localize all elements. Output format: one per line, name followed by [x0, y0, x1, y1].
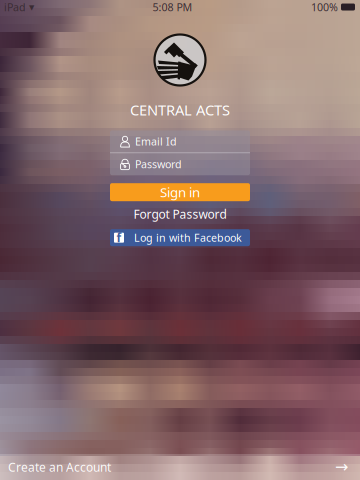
staticText: Email Id [135, 134, 177, 149]
staticText: Sign in [160, 183, 200, 201]
button[interactable]: Create an Account [0, 454, 360, 480]
staticText: Forgot Password [133, 206, 226, 222]
staticText: Password [135, 157, 182, 171]
staticText: 5:08 PM [152, 0, 192, 14]
staticText: ▾ [29, 1, 34, 13]
staticText: 100% [311, 0, 338, 14]
staticText: Log in with Facebook [134, 231, 242, 245]
button[interactable]: f [110, 229, 250, 246]
staticText: CENTRAL ACTS [130, 100, 230, 119]
staticText: iPad [4, 0, 26, 14]
staticText: Create an Account [8, 459, 111, 475]
button[interactable]: Sign in [110, 183, 250, 201]
staticText: f [116, 230, 121, 246]
button[interactable]: Forgot Password [110, 207, 250, 221]
staticText: → [335, 458, 348, 476]
